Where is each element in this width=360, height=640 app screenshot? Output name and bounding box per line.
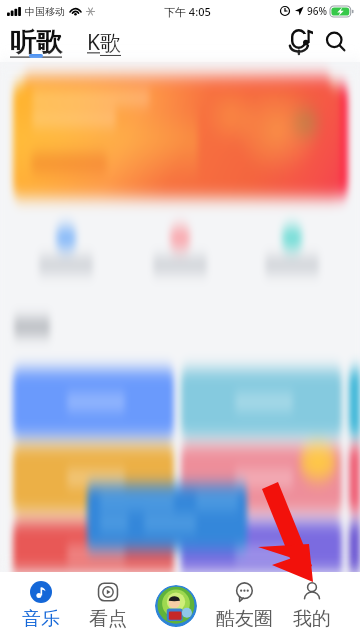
staticText: 音乐: [22, 607, 60, 631]
button[interactable]: 听歌: [9, 26, 63, 59]
staticText: 酷友圈: [216, 607, 273, 631]
button[interactable]: 我的: [278, 572, 346, 640]
button[interactable]: 看点: [74, 572, 142, 640]
staticText: K歌: [87, 28, 121, 57]
staticText: 看点: [89, 607, 127, 631]
button[interactable]: Profile avatar: [155, 585, 197, 627]
staticText: 听歌: [10, 26, 62, 59]
staticText: 中国移动: [25, 5, 65, 18]
button[interactable]: Search: [321, 27, 351, 57]
staticText: 96%: [307, 4, 327, 18]
button[interactable]: K歌: [86, 28, 122, 57]
button[interactable]: 音乐: [7, 572, 74, 640]
button[interactable]: 酷友圈: [210, 572, 278, 640]
button[interactable]: Identify song: [287, 27, 317, 57]
staticText: 下午 4:05: [164, 4, 211, 19]
staticText: 我的: [293, 607, 331, 631]
